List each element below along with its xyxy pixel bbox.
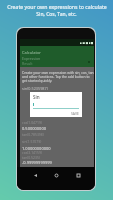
- staticText: tan(0.785398): [22, 132, 44, 137]
- staticText: SAVE: [71, 111, 79, 116]
- staticText: Result: [22, 61, 33, 66]
- staticText: Create your own expression with sin, cos…: [22, 70, 94, 75]
- button[interactable]: SAVE: [70, 111, 80, 116]
- staticText: sin(1.57079): [22, 139, 42, 144]
- staticText: Sin: [33, 94, 40, 100]
- button[interactable]: Back: [31, 171, 39, 179]
- staticText: sin(0.5235987): [22, 86, 48, 91]
- staticText: cos(3.14159): [22, 150, 42, 155]
- staticText: get started quickly.: [22, 78, 53, 83]
- button[interactable]: Sin: [30, 92, 82, 117]
- staticText: tan(0.5235): [22, 155, 40, 160]
- button[interactable]: Home: [52, 171, 60, 179]
- staticText: cos(1.04719): [22, 120, 42, 125]
- button[interactable]: Recents: [74, 171, 82, 179]
- staticText: Expression: [22, 56, 41, 61]
- staticText: Sin, Cos, Tan, etc.: [36, 11, 77, 18]
- staticText: 1.00000000000: [22, 146, 51, 151]
- staticText: Create your own expressions to calculate: [7, 3, 107, 10]
- staticText: -0.99999999999: [22, 160, 52, 165]
- staticText: Calculator: [22, 50, 41, 55]
- staticText: and other functions. Tap the add button …: [22, 74, 90, 79]
- staticText: 0.500000000: [22, 126, 46, 131]
